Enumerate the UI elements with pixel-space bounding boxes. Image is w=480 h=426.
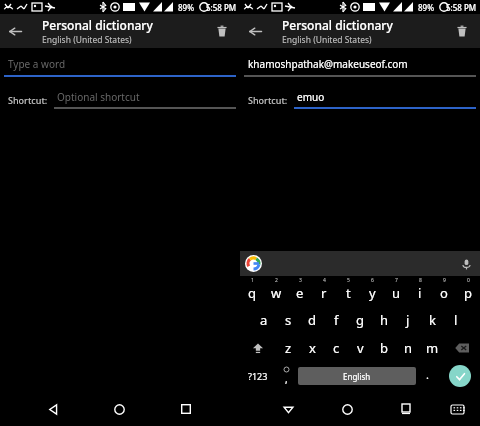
button[interactable]: Home	[334, 396, 360, 422]
staticText: l	[454, 311, 458, 329]
staticText: q	[248, 284, 256, 302]
button[interactable]: a	[252, 306, 276, 334]
staticText: 5	[347, 277, 350, 284]
button[interactable]: 9	[432, 276, 456, 306]
staticText: m	[426, 339, 439, 357]
staticText: 89%	[178, 2, 194, 13]
staticText: v	[357, 339, 364, 357]
button[interactable]: j	[396, 306, 420, 334]
button[interactable]: Switch keyboard	[444, 396, 470, 422]
button[interactable]: 8	[408, 276, 432, 306]
button[interactable]: c	[324, 334, 348, 362]
staticText: s	[285, 311, 292, 329]
staticText: f	[334, 311, 339, 329]
staticText: u	[392, 284, 401, 302]
button[interactable]: v	[348, 334, 372, 362]
staticText: 3	[299, 277, 302, 284]
button[interactable]: Delete	[209, 18, 235, 44]
button[interactable]: Back	[0, 16, 30, 46]
button[interactable]: Comma and emoji	[275, 362, 298, 390]
button[interactable]: 7	[384, 276, 408, 306]
staticText: 89%	[418, 2, 434, 13]
staticText: Shortcut:	[248, 94, 288, 106]
button[interactable]: 2	[264, 276, 288, 306]
staticText: 8	[419, 277, 422, 284]
button[interactable]: English	[298, 367, 416, 385]
staticText: Personal dictionary	[42, 17, 153, 33]
staticText: 7	[395, 277, 398, 284]
staticText: j	[406, 311, 410, 329]
button[interactable]: h	[372, 306, 396, 334]
staticText: e	[296, 284, 304, 302]
staticText: emuo	[297, 90, 325, 104]
staticText: i	[418, 284, 422, 302]
staticText: k	[429, 311, 436, 329]
button[interactable]: f	[324, 306, 348, 334]
button[interactable]: n	[396, 334, 420, 362]
button[interactable]: .	[416, 362, 439, 390]
staticText: ?123	[248, 370, 268, 382]
staticText: n	[404, 339, 413, 357]
staticText: Type a word	[8, 57, 66, 71]
staticText: 0	[467, 277, 470, 284]
staticText: y	[369, 284, 376, 302]
staticText: b	[380, 339, 388, 357]
staticText: English	[343, 371, 371, 382]
button[interactable]: Hide keyboard	[275, 396, 301, 422]
button[interactable]: l	[444, 306, 468, 334]
staticText: 2	[275, 277, 278, 284]
button[interactable]: Back	[40, 396, 66, 422]
button[interactable]: 4	[312, 276, 336, 306]
button[interactable]: Voice input	[458, 256, 474, 272]
staticText: 5:58 PM	[206, 2, 237, 13]
staticText: t	[346, 284, 351, 302]
button[interactable]: 3	[288, 276, 312, 306]
staticText: .	[426, 367, 429, 382]
button[interactable]: m	[420, 334, 444, 362]
staticText: h	[380, 311, 389, 329]
button[interactable]: Shift	[240, 334, 276, 362]
staticText: o	[440, 284, 448, 302]
staticText: English (United States)	[282, 34, 372, 46]
button[interactable]: 1	[240, 276, 264, 306]
button[interactable]: 5	[336, 276, 360, 306]
button[interactable]: Back	[240, 16, 270, 46]
button[interactable]: 0	[456, 276, 480, 306]
button[interactable]: d	[300, 306, 324, 334]
staticText: English (United States)	[42, 34, 132, 46]
button[interactable]: 6	[360, 276, 384, 306]
staticText: w	[271, 284, 282, 302]
button[interactable]: ?123	[240, 362, 275, 390]
staticText: khamoshpathak@makeuseof.com	[248, 57, 408, 71]
button[interactable]: b	[372, 334, 396, 362]
staticText: z	[285, 339, 292, 357]
staticText: g	[356, 311, 364, 329]
button[interactable]: k	[420, 306, 444, 334]
button[interactable]: Google	[245, 255, 262, 272]
staticText: r	[321, 284, 327, 302]
button[interactable]: s	[276, 306, 300, 334]
staticText: p	[464, 284, 472, 302]
staticText: 6	[371, 277, 374, 284]
button[interactable]: Enter	[449, 365, 471, 387]
staticText: Optional shortcut	[57, 90, 140, 104]
staticText: a	[260, 311, 268, 329]
button[interactable]: z	[276, 334, 300, 362]
button[interactable]: Backspace	[444, 334, 480, 362]
button[interactable]: Recents	[173, 396, 199, 422]
staticText: Shortcut:	[8, 94, 48, 106]
staticText: c	[333, 339, 340, 357]
staticText: x	[309, 339, 316, 357]
button[interactable]: g	[348, 306, 372, 334]
staticText: 9	[443, 277, 446, 284]
button[interactable]: Recents	[393, 396, 419, 422]
staticText: d	[308, 311, 316, 329]
button[interactable]: Home	[106, 396, 132, 422]
staticText: 1	[251, 277, 254, 284]
staticText: 4	[323, 277, 326, 284]
button[interactable]: x	[300, 334, 324, 362]
staticText: 5:58 PM	[446, 2, 477, 13]
staticText: ,	[285, 372, 288, 386]
staticText: Personal dictionary	[282, 17, 393, 33]
button[interactable]: Delete	[449, 18, 475, 44]
